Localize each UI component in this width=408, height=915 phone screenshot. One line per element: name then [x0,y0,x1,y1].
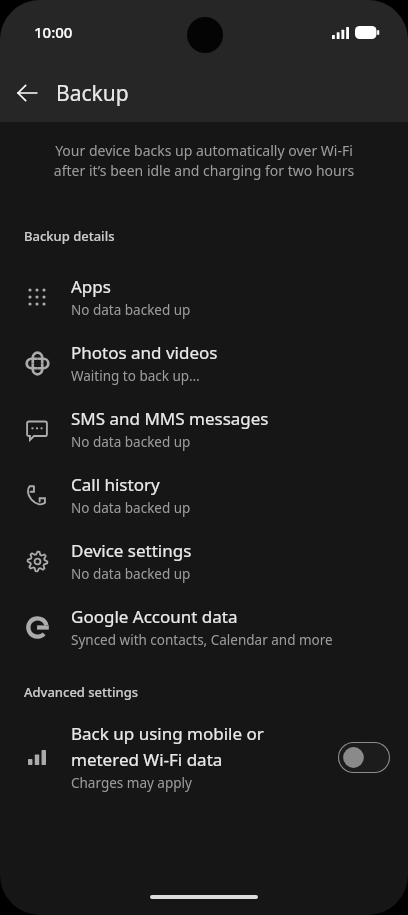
button[interactable]: Device settings [0,528,408,594]
staticText: No data backed up [71,565,191,583]
staticText: No data backed up [71,301,191,319]
button[interactable]: Toggle back up using mobile or metered W… [338,742,390,773]
button[interactable]: Back up using mobile or metered Wi-Fi da… [0,718,408,796]
staticText: Backup [56,79,129,108]
button[interactable]: SMS and MMS messages [0,396,408,462]
button[interactable]: Photos and videos [0,330,408,396]
staticText: Advanced settings [24,683,139,701]
staticText: Device settings [71,539,192,562]
staticText: Google Account data [71,605,238,628]
staticText: Photos and videos [71,341,218,364]
button[interactable]: Call history [0,462,408,528]
staticText: No data backed up [71,433,191,451]
staticText: SMS and MMS messages [71,407,269,430]
staticText: Synced with contacts, Calendar and more [71,631,333,649]
staticText: Charges may apply [71,774,192,792]
button[interactable]: Apps [0,264,408,330]
staticText: No data backed up [71,499,191,517]
staticText: Apps [71,275,111,298]
staticText: Backup details [24,227,115,245]
staticText: 10:00 [34,22,73,42]
staticText: Back up using mobile or metered Wi-Fi da… [71,722,328,771]
staticText: Waiting to back up… [71,367,200,385]
staticText: Call history [71,473,160,496]
button[interactable]: Google Account data [0,594,408,660]
staticText: Your device backs up automatically over … [45,141,363,181]
button[interactable]: Back [7,73,47,113]
